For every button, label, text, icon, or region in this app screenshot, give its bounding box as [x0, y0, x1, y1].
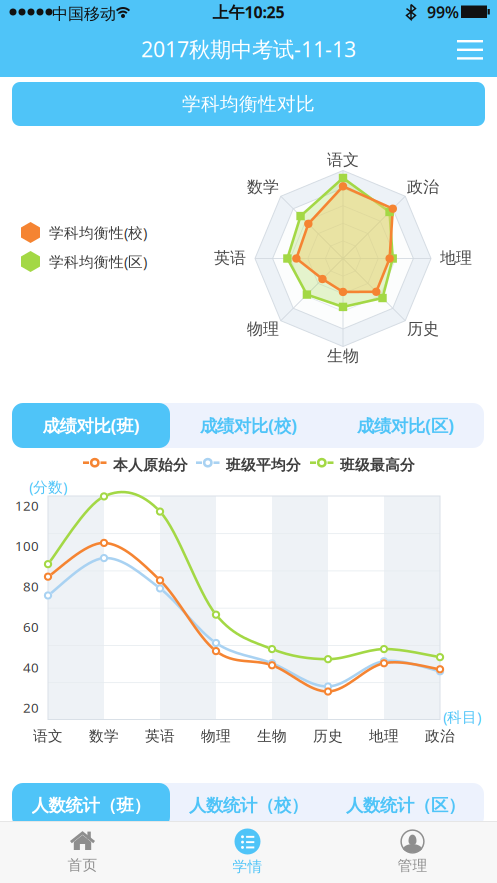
staticText: (科目)	[443, 707, 481, 726]
button[interactable]: 人数统计（班）	[12, 783, 170, 828]
staticText: 中国移动	[52, 4, 116, 24]
staticText: 语文	[33, 727, 63, 745]
staticText: 2017秋期中考试-11-13	[141, 35, 356, 63]
button[interactable]: 人数统计（校）	[170, 783, 327, 828]
button[interactable]: 成绩对比(区)	[327, 403, 484, 448]
button[interactable]: 学科均衡性对比	[12, 82, 485, 126]
button[interactable]: 人数统计（区）	[327, 783, 484, 828]
staticText: 60	[23, 618, 39, 636]
staticText: 物理	[201, 727, 231, 745]
staticText: 政治	[407, 177, 439, 197]
staticText: 语文	[327, 150, 359, 170]
staticText: (分数)	[29, 477, 67, 496]
staticText: 成绩对比(校)	[200, 414, 297, 437]
button[interactable]: 成绩对比(校)	[170, 403, 327, 448]
staticText: 99%	[427, 1, 459, 23]
staticText: 班级平均分	[226, 456, 301, 474]
staticText: 40	[23, 658, 39, 676]
staticText: 学科均衡性(区)	[49, 252, 147, 271]
staticText: 人数统计（区）	[346, 795, 465, 816]
staticText: 数学	[247, 177, 279, 197]
staticText: 成绩对比(班)	[42, 414, 139, 437]
staticText: 英语	[145, 727, 175, 745]
staticText: 学科均衡性对比	[182, 92, 315, 115]
button[interactable]: 首页	[0, 821, 165, 883]
staticText: 物理	[247, 319, 279, 339]
staticText: 英语	[214, 248, 246, 268]
staticText: 管理	[397, 856, 427, 874]
staticText: 学情	[232, 857, 262, 875]
staticText: 生物	[257, 727, 287, 745]
staticText: 地理	[369, 727, 399, 745]
staticText: 本人原始分	[113, 456, 188, 474]
staticText: 100	[15, 537, 39, 555]
staticText: 成绩对比(区)	[357, 414, 454, 437]
staticText: 首页	[67, 856, 97, 874]
staticText: 人数统计（班）	[31, 795, 150, 816]
staticText: 80	[23, 577, 39, 595]
staticText: 班级最高分	[340, 456, 415, 474]
staticText: 政治	[425, 727, 455, 745]
button[interactable]: 学情	[165, 821, 330, 883]
button[interactable]: 成绩对比(班)	[12, 403, 170, 448]
staticText: 20	[23, 699, 39, 716]
staticText: 历史	[407, 319, 439, 339]
staticText: 数学	[89, 727, 119, 745]
button[interactable]: Menu	[448, 30, 492, 70]
staticText: 历史	[313, 727, 343, 745]
staticText: 上午10:25	[212, 1, 284, 23]
staticText: 学科均衡性(校)	[49, 223, 147, 242]
staticText: 人数统计（校）	[189, 795, 308, 816]
button[interactable]: 管理	[330, 821, 495, 883]
staticText: 地理	[440, 248, 472, 268]
staticText: 生物	[327, 346, 359, 366]
staticText: 120	[15, 497, 39, 514]
